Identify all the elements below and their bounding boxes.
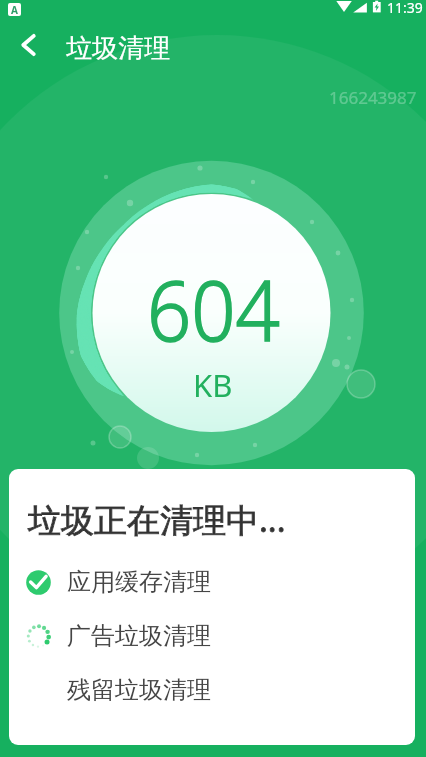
staticText: 应用缓存清理 [67,567,211,597]
staticText: 11:39 [387,0,423,17]
staticText: 604 [147,253,280,365]
staticText: A [11,3,18,16]
staticText: 垃圾正在清理中... [28,497,286,542]
staticText: 广告垃圾清理 [67,621,211,651]
staticText: 垃圾清理 [66,32,170,65]
staticText: 166243987 [329,86,417,109]
button[interactable]: 残留垃圾清理 [9,663,415,717]
staticText: 垃圾正在清理中... [28,497,286,542]
button[interactable]: 广告垃圾清理 [9,609,415,663]
button[interactable]: 应用缓存清理 [9,555,415,609]
button[interactable]: Back [7,23,51,67]
staticText: 604 [147,253,280,365]
staticText: KB [193,364,233,406]
staticText: 残留垃圾清理 [67,675,211,705]
